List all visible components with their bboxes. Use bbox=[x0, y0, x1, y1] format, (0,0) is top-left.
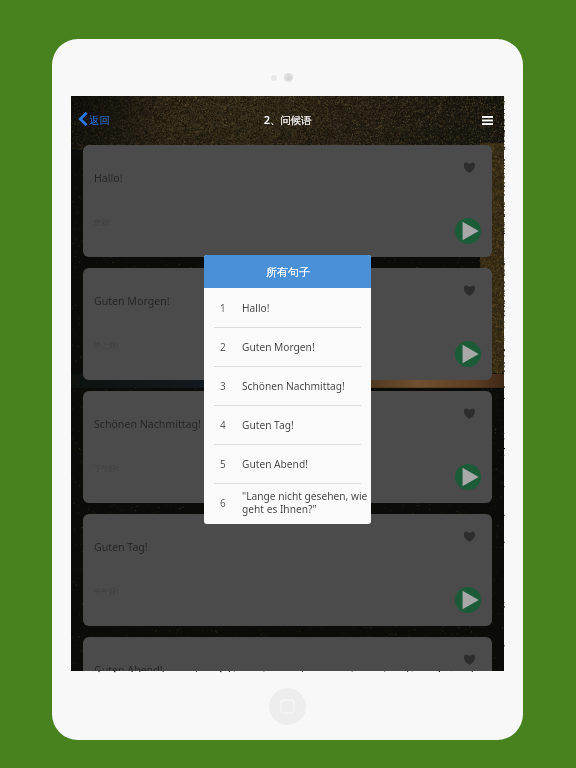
staticText: Hallo! bbox=[242, 301, 270, 315]
staticText: Guten Tag! bbox=[242, 418, 294, 432]
staticText: 您好! bbox=[94, 217, 111, 227]
staticText: Schönen Nachmittag! bbox=[94, 417, 201, 431]
button[interactable]: Favorite bbox=[462, 529, 476, 543]
button[interactable]: Favorite bbox=[462, 283, 476, 297]
button[interactable]: Hallo! bbox=[83, 145, 492, 257]
button[interactable]: Menu bbox=[474, 107, 500, 133]
staticText: Schönen Nachmittag! bbox=[242, 379, 345, 393]
button[interactable]: Home bbox=[269, 688, 306, 725]
button[interactable]: Play bbox=[455, 218, 481, 244]
button[interactable]: Play bbox=[455, 341, 481, 367]
button[interactable]: 1 bbox=[204, 288, 371, 327]
button[interactable]: Play bbox=[455, 587, 481, 613]
staticText: Hallo! bbox=[94, 171, 123, 185]
button[interactable]: Play bbox=[455, 464, 481, 490]
button[interactable]: 4 bbox=[204, 405, 371, 444]
staticText: Guten Tag! bbox=[94, 540, 148, 554]
button[interactable]: Guten Abend! bbox=[83, 637, 492, 671]
button[interactable]: 返回 bbox=[75, 108, 114, 130]
staticText: 4 bbox=[220, 418, 226, 432]
staticText: 3 bbox=[220, 379, 226, 393]
staticText: 返回 bbox=[89, 114, 110, 127]
staticText: Guten Morgen! bbox=[94, 294, 170, 308]
button[interactable]: 3 bbox=[204, 366, 371, 405]
staticText: Guten Morgen! bbox=[242, 340, 315, 354]
button[interactable]: 6 bbox=[204, 483, 371, 522]
staticText: 下午好! bbox=[94, 463, 119, 473]
button[interactable]: 2 bbox=[204, 327, 371, 366]
staticText: 早上好! bbox=[94, 340, 119, 350]
button[interactable]: 5 bbox=[204, 444, 371, 483]
staticText: 所有句子 bbox=[266, 265, 310, 279]
staticText: Guten Abend! bbox=[242, 457, 308, 471]
staticText: 5 bbox=[220, 457, 226, 471]
button[interactable]: Favorite bbox=[462, 160, 476, 174]
staticText: 2 bbox=[220, 340, 226, 354]
button[interactable]: Favorite bbox=[462, 652, 476, 666]
staticText: 2、问候语 bbox=[264, 113, 312, 127]
button[interactable]: Guten Tag! bbox=[83, 514, 492, 626]
staticText: "Lange nicht gesehen, wie geht es Ihnen?… bbox=[242, 489, 368, 516]
staticText: Guten Abend! bbox=[94, 663, 163, 671]
button[interactable]: Schönen Nachmittag! bbox=[83, 391, 492, 503]
button[interactable]: Favorite bbox=[462, 406, 476, 420]
button[interactable]: Guten Morgen! bbox=[83, 268, 492, 380]
staticText: 中午好! bbox=[94, 586, 119, 596]
staticText: 1 bbox=[220, 301, 226, 315]
staticText: 6 bbox=[220, 496, 226, 510]
